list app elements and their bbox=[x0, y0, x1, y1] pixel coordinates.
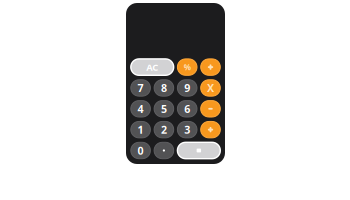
button[interactable]: Percent bbox=[177, 59, 197, 75]
staticText: 5 bbox=[161, 102, 167, 116]
button[interactable]: 3 bbox=[177, 121, 197, 138]
button[interactable]: 1 bbox=[131, 121, 150, 138]
staticText: 2 bbox=[161, 123, 167, 137]
staticText: 6 bbox=[184, 102, 190, 116]
staticText: 1 bbox=[138, 123, 144, 137]
staticText: 7 bbox=[138, 81, 144, 95]
button[interactable]: Multiply bbox=[201, 80, 220, 96]
button[interactable]: Minus bbox=[201, 101, 220, 117]
staticText: X bbox=[207, 81, 214, 95]
button[interactable]: Decimal point bbox=[154, 142, 174, 159]
button[interactable]: 9 bbox=[177, 80, 197, 96]
button[interactable]: 8 bbox=[154, 80, 174, 96]
staticText: % bbox=[184, 62, 191, 72]
staticText: 8 bbox=[161, 81, 167, 95]
button[interactable]: Clear bbox=[131, 59, 174, 75]
staticText: 4 bbox=[138, 102, 144, 116]
staticText: 3 bbox=[184, 123, 190, 137]
button[interactable]: 2 bbox=[154, 121, 174, 138]
button[interactable]: Equals bbox=[177, 142, 220, 159]
staticText: AC bbox=[146, 61, 158, 73]
staticText: 9 bbox=[184, 81, 190, 95]
button[interactable]: Plus bbox=[201, 121, 220, 138]
button[interactable]: 6 bbox=[177, 101, 197, 117]
button[interactable]: 4 bbox=[131, 101, 150, 117]
button[interactable]: 0 bbox=[131, 142, 150, 159]
staticText: 0 bbox=[138, 143, 144, 158]
button[interactable]: 7 bbox=[131, 80, 150, 96]
button[interactable]: 5 bbox=[154, 101, 174, 117]
button[interactable]: Divide bbox=[201, 59, 220, 75]
